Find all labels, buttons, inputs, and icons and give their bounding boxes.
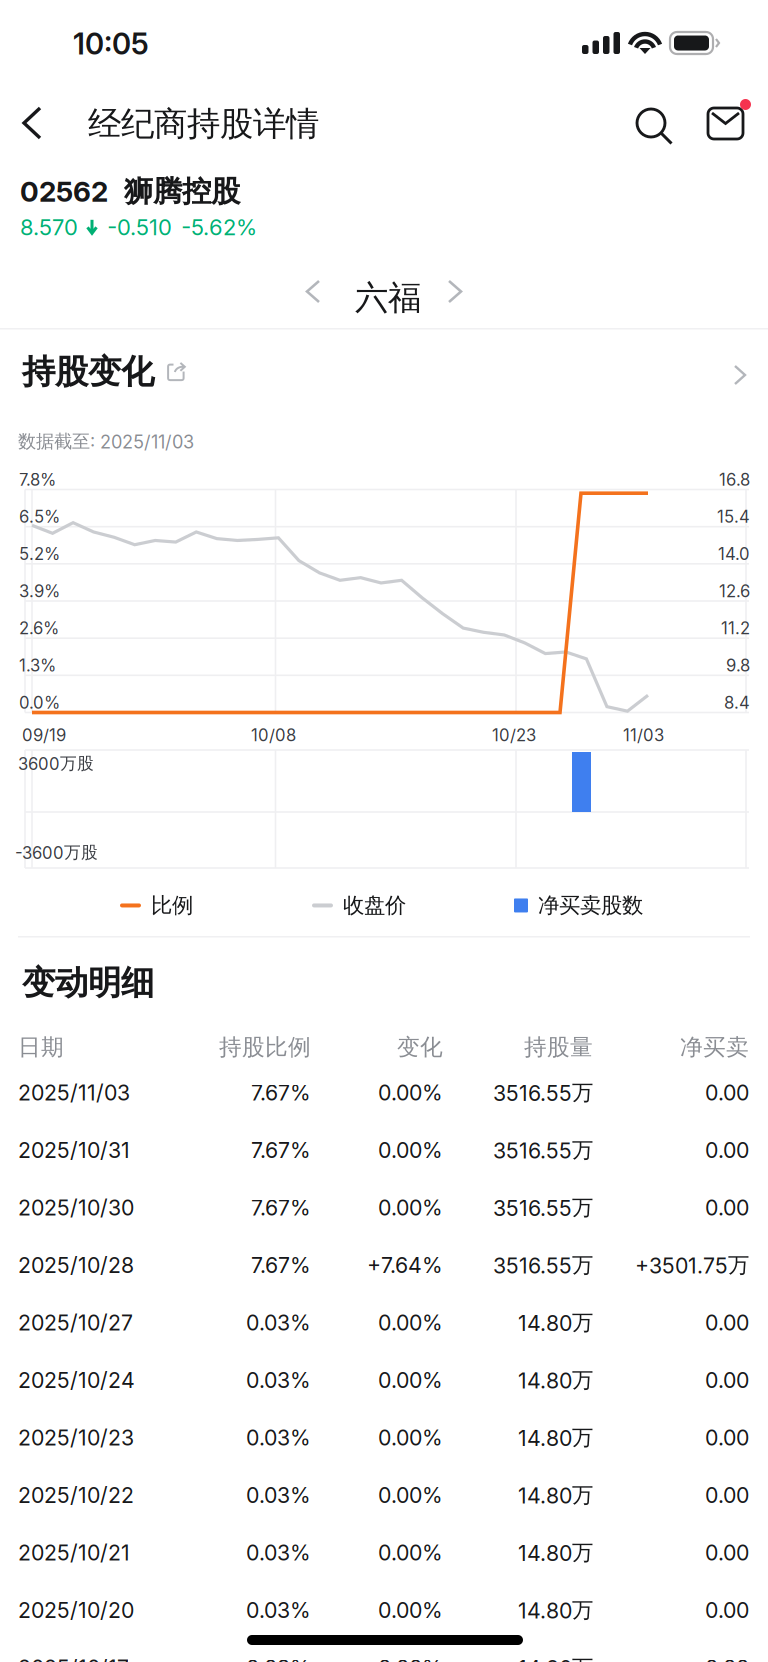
staticText: 8.4 xyxy=(724,692,750,713)
staticText: 14.80万 xyxy=(518,1424,593,1451)
button[interactable]: 2025/10/17 xyxy=(0,1639,768,1662)
staticText: 数据截至: 2025/11/03 xyxy=(18,430,194,453)
staticText: 0.03% xyxy=(246,1367,311,1393)
button[interactable]: 持股变化 xyxy=(4,344,768,400)
staticText: 0.00 xyxy=(705,1425,749,1451)
button[interactable]: Next broker xyxy=(439,270,471,313)
staticText: 0.00% xyxy=(378,1367,443,1393)
staticText: 11.2 xyxy=(721,618,750,638)
staticText: 3516.55万 xyxy=(493,1137,593,1164)
staticText: 持股变化 xyxy=(22,351,154,393)
staticText: 14.80万 xyxy=(518,1597,593,1624)
staticText: 9.8 xyxy=(726,655,750,675)
staticText: 10:05 xyxy=(73,26,149,61)
staticText: 经纪商持股详情 xyxy=(88,103,319,145)
staticText: 7.67% xyxy=(251,1252,311,1278)
staticText: 3.9% xyxy=(19,581,60,601)
staticText: 净买卖股数 xyxy=(538,892,643,919)
staticText: 14.80万 xyxy=(518,1539,593,1566)
staticText: 变动明细 xyxy=(22,962,154,1004)
staticText: 0.00% xyxy=(378,1597,443,1623)
button[interactable]: 2025/10/21 xyxy=(0,1524,768,1581)
staticText: 0.00% xyxy=(378,1425,443,1451)
staticText: 3600万股 xyxy=(18,753,94,774)
staticText: 0.00 xyxy=(705,1367,749,1393)
staticText: 0.0% xyxy=(19,692,60,713)
staticText: -5.62% xyxy=(181,214,257,241)
staticText: 0.00 xyxy=(705,1080,749,1106)
staticText: 2025/11/03 xyxy=(18,1080,130,1106)
button[interactable]: 2025/10/22 xyxy=(0,1466,768,1524)
staticText: 净买卖 xyxy=(680,1033,749,1062)
staticText: 2025/10/22 xyxy=(18,1482,134,1508)
button[interactable]: Back xyxy=(12,98,52,148)
staticText: 11/03 xyxy=(623,725,664,745)
staticText: -3600万股 xyxy=(15,842,98,863)
staticText: 09/19 xyxy=(22,725,66,745)
staticText: 02562 xyxy=(20,174,108,208)
staticText: 5.2% xyxy=(19,544,60,564)
staticText: 0.03% xyxy=(246,1540,311,1566)
staticText: 0.00 xyxy=(705,1310,749,1336)
staticText: 6.5% xyxy=(19,507,60,527)
staticText: 比例 xyxy=(151,892,193,919)
staticText: 持股比例 xyxy=(219,1033,311,1062)
button[interactable]: 2025/10/23 xyxy=(0,1409,768,1466)
staticText: 14.80万 xyxy=(518,1367,593,1394)
staticText: 0.03% xyxy=(246,1597,311,1623)
staticText: 2025/10/31 xyxy=(18,1137,130,1163)
staticText: 2025/10/27 xyxy=(18,1310,133,1336)
button[interactable]: 2025/10/24 xyxy=(0,1351,768,1409)
staticText: 3516.55万 xyxy=(493,1079,593,1106)
staticText: 0.00% xyxy=(378,1310,443,1336)
staticText: 0.00% xyxy=(378,1137,443,1163)
staticText: 0.00 xyxy=(705,1597,749,1623)
staticText: 持股量 xyxy=(524,1033,593,1062)
staticText: 2025/10/17 xyxy=(18,1655,129,1662)
staticText: 0.00% xyxy=(378,1655,443,1662)
staticText: 7.67% xyxy=(251,1137,311,1163)
staticText: 0.03% xyxy=(246,1655,311,1662)
button[interactable]: 2025/10/31 xyxy=(0,1121,768,1179)
staticText: 2025/10/24 xyxy=(18,1367,135,1393)
button[interactable]: Previous broker xyxy=(297,270,329,313)
staticText: 14.80万 xyxy=(518,1482,593,1509)
staticText: 3516.55万 xyxy=(493,1194,593,1221)
staticText: 0.03% xyxy=(246,1482,311,1508)
staticText: +7.64% xyxy=(367,1252,443,1278)
button[interactable]: Messages xyxy=(708,99,751,139)
staticText: 2025/10/20 xyxy=(18,1597,134,1623)
staticText: 7.8% xyxy=(19,469,56,490)
staticText: -0.510 xyxy=(107,214,172,241)
staticText: 1.3% xyxy=(19,655,56,675)
staticText: 0.03% xyxy=(246,1425,311,1451)
button[interactable]: 2025/10/28 xyxy=(0,1236,768,1294)
button[interactable]: 2025/10/20 xyxy=(0,1581,768,1639)
staticText: 0.00 xyxy=(705,1540,749,1566)
staticText: 16.8 xyxy=(719,469,750,490)
button[interactable]: Search xyxy=(637,109,669,141)
staticText: 0.00 xyxy=(705,1137,749,1163)
staticText: 8.570 xyxy=(20,214,78,241)
staticText: 日期 xyxy=(18,1033,64,1062)
button[interactable]: 2025/10/30 xyxy=(0,1179,768,1236)
staticText: 变化 xyxy=(397,1033,443,1062)
staticText: 14.80万 xyxy=(518,1654,593,1662)
staticText: 2025/10/30 xyxy=(18,1195,134,1221)
button[interactable]: 2025/10/27 xyxy=(0,1294,768,1351)
staticText: 0.03% xyxy=(246,1310,311,1336)
staticText: 0.00 xyxy=(705,1482,749,1508)
button[interactable]: 2025/11/03 xyxy=(0,1064,768,1121)
staticText: 10/08 xyxy=(251,725,296,745)
staticText: 14.80万 xyxy=(518,1309,593,1336)
staticText: 狮腾控股 xyxy=(124,173,240,210)
staticText: 2025/10/21 xyxy=(18,1540,130,1566)
staticText: 7.67% xyxy=(251,1195,311,1221)
staticText: +3501.75万 xyxy=(635,1252,749,1279)
staticText: 7.67% xyxy=(251,1080,311,1106)
staticText: 12.6 xyxy=(719,581,750,601)
staticText: 10/23 xyxy=(492,725,536,745)
staticText: 15.4 xyxy=(717,507,750,527)
staticText: 0.00% xyxy=(378,1080,443,1106)
staticText: 0.00% xyxy=(378,1195,443,1221)
